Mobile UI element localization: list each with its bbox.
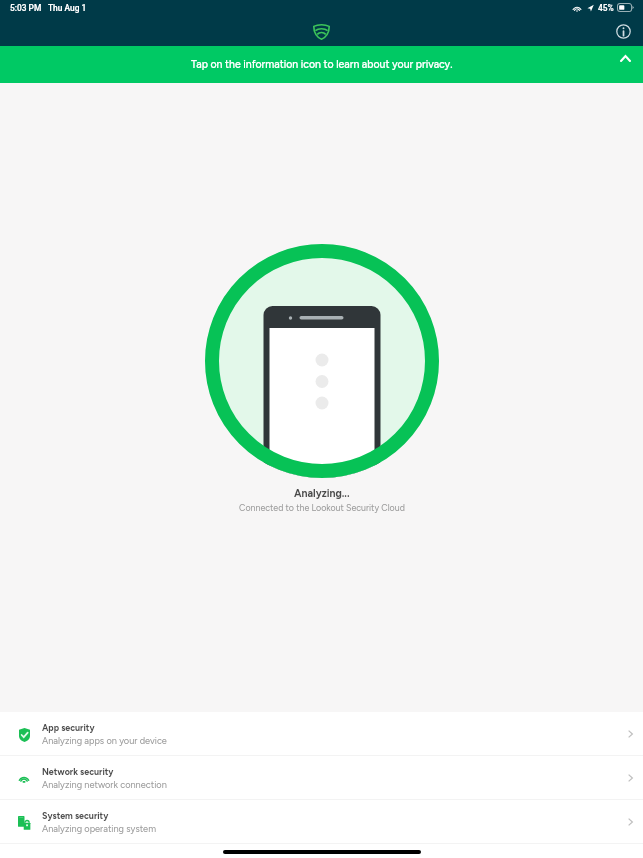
button[interactable]: Information [610,18,636,44]
staticText: Tap on the information icon to learn abo… [191,58,453,71]
staticText: App security [42,723,95,734]
staticText: Network security [42,767,114,778]
staticText: Analyzing apps on your device [42,735,167,746]
button[interactable]: App security [0,712,643,755]
button[interactable]: Collapse banner [618,51,632,65]
button[interactable]: System security [0,800,643,843]
staticText: 45% [598,3,614,13]
staticText: 5:03 PM [10,3,42,13]
button[interactable]: Tap on the information icon to learn abo… [0,46,643,83]
staticText: Analyzing... [294,487,350,500]
staticText: Analyzing network connection [42,779,167,790]
staticText: Connected to the Lookout Security Cloud [239,503,405,514]
button[interactable]: Network security [0,756,643,799]
staticText: Thu Aug 1 [48,3,87,13]
staticText: System security [42,811,109,822]
staticText: Analyzing operating system [42,823,156,834]
